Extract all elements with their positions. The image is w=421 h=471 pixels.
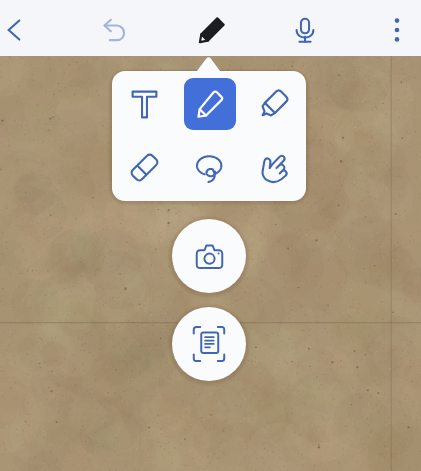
button[interactable]: Eraser	[118, 141, 170, 193]
button[interactable]: Pen	[184, 78, 236, 130]
button[interactable]: Text	[118, 78, 170, 130]
button[interactable]: Pan	[249, 141, 301, 193]
button[interactable]: Scan document	[172, 307, 246, 381]
button[interactable]: Camera	[172, 219, 246, 293]
button[interactable]: Highlighter	[249, 78, 301, 130]
button[interactable]: Back	[0, 0, 38, 56]
button[interactable]: Lasso select	[184, 141, 236, 193]
button[interactable]: Pen	[187, 0, 236, 56]
button[interactable]: Voice input	[281, 0, 329, 56]
button[interactable]: Undo	[90, 0, 140, 56]
button[interactable]: More options	[373, 0, 421, 56]
